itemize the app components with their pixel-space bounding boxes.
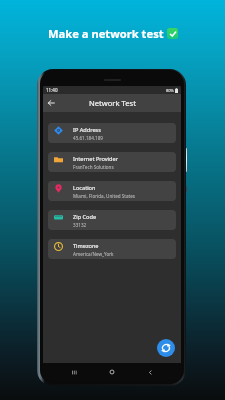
staticText: FranTech Solutions <box>73 164 114 170</box>
button[interactable]: IP Address <box>48 123 176 143</box>
button[interactable]: Refresh <box>157 339 175 357</box>
staticText: Zip Code <box>73 213 97 221</box>
staticText: Network Test <box>89 98 136 108</box>
button[interactable]: Back <box>143 365 157 379</box>
staticText: Make a network test <box>48 26 164 41</box>
staticText: Timezone <box>73 242 99 250</box>
staticText: Internet Provider <box>73 155 118 163</box>
button[interactable]: Location <box>48 181 176 201</box>
staticText: IP Address <box>73 126 101 134</box>
button[interactable]: Timezone <box>48 239 176 259</box>
staticText: America/New_York <box>73 251 114 257</box>
button[interactable]: Internet Provider <box>48 152 176 172</box>
staticText: Miami, Florida, United States <box>73 193 135 199</box>
button[interactable]: Zip Code <box>48 210 176 230</box>
button[interactable]: Back <box>44 96 58 110</box>
staticText: Location <box>73 184 96 192</box>
button[interactable]: Recents <box>67 365 81 379</box>
staticText: 33132 <box>73 222 87 228</box>
staticText: 11:40 <box>46 87 58 93</box>
button[interactable]: Home <box>105 365 119 379</box>
staticText: 80% <box>166 88 174 93</box>
staticText: 45.61.184.189 <box>73 135 103 141</box>
